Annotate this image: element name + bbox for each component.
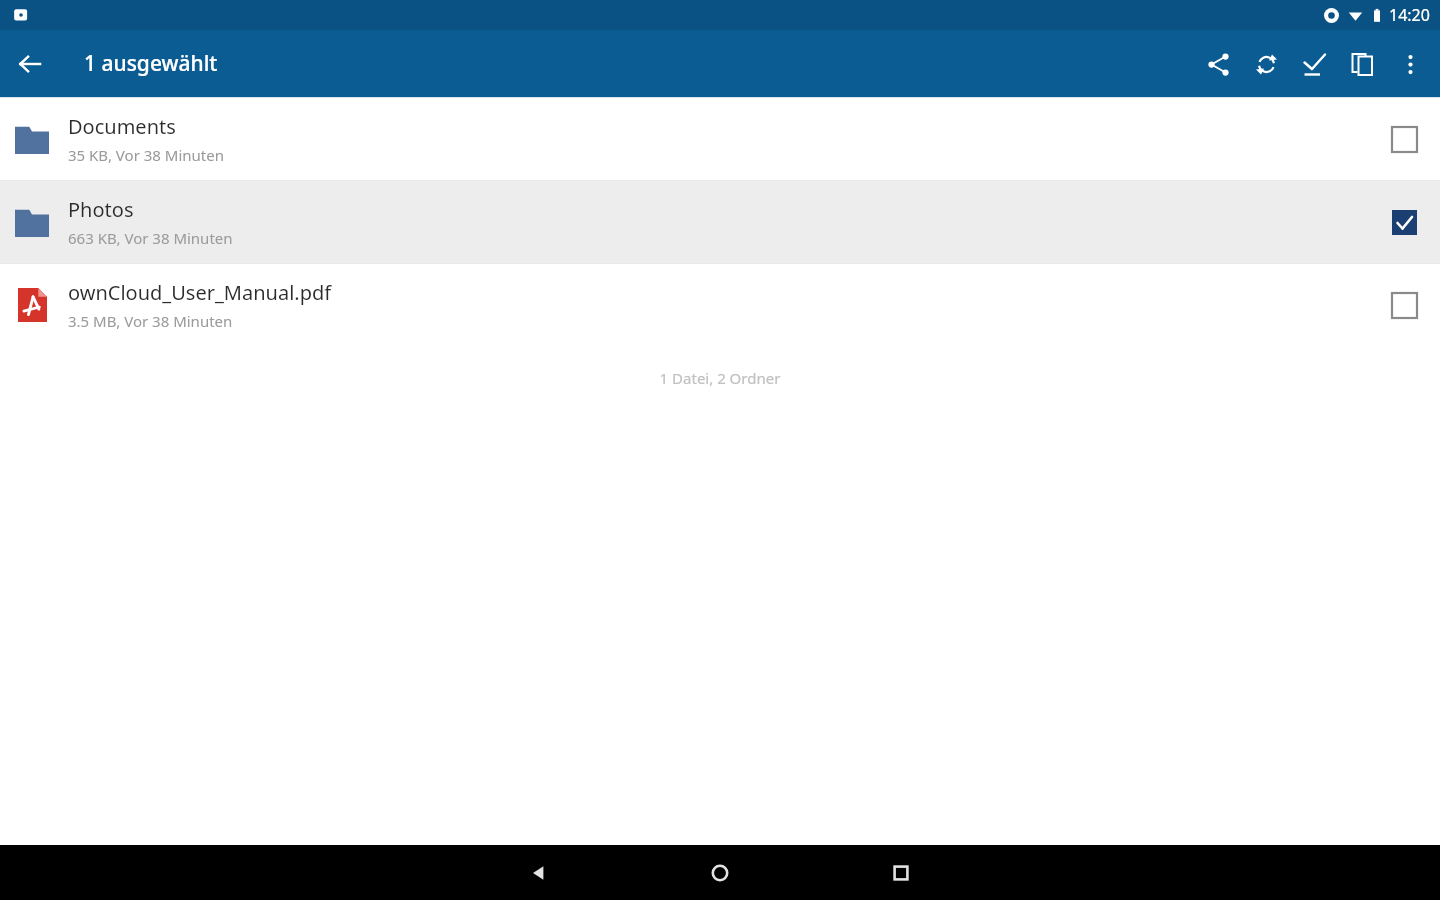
button[interactable]: ownCloud_User_Manual.pdf (0, 264, 1440, 346)
staticText: 663 KB, Vor 38 Minuten (68, 228, 233, 248)
button[interactable]: Documents (0, 98, 1440, 180)
staticText: ownCloud_User_Manual.pdf (68, 279, 332, 306)
button[interactable]: Share (1194, 40, 1242, 88)
button[interactable]: Selected (1376, 194, 1432, 250)
button[interactable]: Copy (1338, 40, 1386, 88)
button[interactable]: Not selected (1376, 111, 1432, 167)
button[interactable]: Home (696, 849, 744, 897)
staticText: 14:20 (1389, 4, 1430, 26)
button[interactable]: Photos (0, 181, 1440, 263)
button[interactable]: More options (1386, 40, 1434, 88)
staticText: 1 ausgewählt (84, 49, 218, 78)
button[interactable]: Back (8, 42, 52, 86)
staticText: 1 Datei, 2 Ordner (0, 368, 1440, 388)
staticText: 35 KB, Vor 38 Minuten (68, 145, 224, 165)
staticText: Documents (68, 113, 176, 140)
button[interactable]: Recents (877, 849, 925, 897)
button[interactable]: Refresh (1242, 40, 1290, 88)
button[interactable]: Select all (1290, 40, 1338, 88)
staticText: Photos (68, 196, 134, 223)
button[interactable]: Not selected (1376, 277, 1432, 333)
button[interactable]: Back (515, 849, 563, 897)
staticText: 3.5 MB, Vor 38 Minuten (68, 311, 233, 331)
